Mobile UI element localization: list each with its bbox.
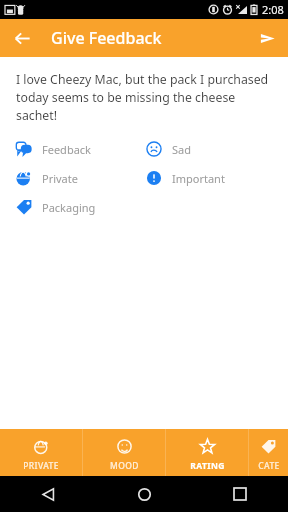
button[interactable]: Packaging — [16, 197, 146, 217]
staticText: PRIVATE — [23, 460, 59, 472]
button[interactable]: Important — [146, 168, 266, 188]
button[interactable]: Send — [252, 23, 282, 53]
staticText: I love Cheezy Mac, but the pack I purcha… — [16, 71, 276, 124]
button[interactable]: Back — [7, 23, 37, 53]
button[interactable]: Private — [16, 168, 146, 188]
staticText: RATING — [190, 460, 225, 472]
staticText: Feedback — [42, 142, 91, 157]
button[interactable]: Feedback — [16, 139, 146, 159]
staticText: Important — [172, 171, 225, 186]
button[interactable]: MOOD — [83, 429, 165, 476]
staticText: Private — [42, 171, 78, 186]
staticText: Sad — [172, 142, 191, 157]
button[interactable]: Sad — [146, 139, 266, 159]
staticText: CATE — [258, 460, 280, 472]
button[interactable]: Home — [129, 479, 159, 509]
staticText: MOOD — [110, 460, 139, 472]
button[interactable]: PRIVATE — [0, 429, 82, 476]
button[interactable]: RATING — [166, 429, 248, 476]
button[interactable]: CATE — [249, 429, 288, 476]
button[interactable]: Back — [33, 479, 63, 509]
staticText: Give Feedback — [51, 27, 162, 49]
staticText: Packaging — [42, 200, 96, 215]
button[interactable]: Recents — [225, 479, 255, 509]
staticText: 2:08 — [262, 2, 284, 17]
